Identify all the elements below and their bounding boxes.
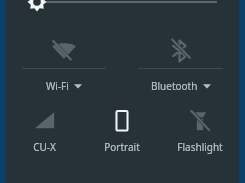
button[interactable]: Brightness [6,0,239,34]
staticText: Portrait [104,140,140,154]
button[interactable]: Bluetooth off [122,34,239,102]
staticText: CU-X [33,140,56,154]
button[interactable]: Screen rotation [83,102,161,154]
button[interactable]: Wi-Fi off [6,34,122,102]
button[interactable]: Mobile data [6,102,83,154]
staticText: Bluetooth [151,79,198,93]
staticText: Wi-Fi [46,79,69,93]
button[interactable]: Flashlight off [161,102,239,154]
staticText: Flashlight [177,140,223,154]
